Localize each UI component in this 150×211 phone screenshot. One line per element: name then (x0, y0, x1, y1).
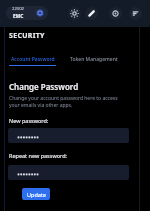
staticText: Change Password (9, 81, 79, 92)
staticText: SECURITY (9, 31, 45, 41)
staticText: Token Management (70, 56, 118, 63)
staticText: 22502 (12, 6, 24, 12)
staticText: Change your account password here to acc… (9, 95, 129, 108)
staticText: New password: (9, 117, 49, 124)
button[interactable]: Compose (85, 7, 98, 20)
staticText: EMC (13, 13, 24, 20)
button[interactable] (8, 128, 129, 143)
button[interactable] (8, 165, 129, 180)
staticText: Update (27, 191, 46, 198)
button[interactable]: 22502 (6, 6, 48, 20)
button[interactable]: Token Management (69, 56, 119, 66)
staticText: Repeat new password: (9, 152, 68, 159)
button[interactable]: Menu (129, 7, 142, 20)
button[interactable]: Brightness (68, 7, 81, 20)
staticText: Account Password (11, 56, 55, 63)
button[interactable]: Account Password (9, 56, 56, 66)
button[interactable]: Update (22, 188, 50, 200)
button[interactable]: Account (109, 7, 122, 20)
